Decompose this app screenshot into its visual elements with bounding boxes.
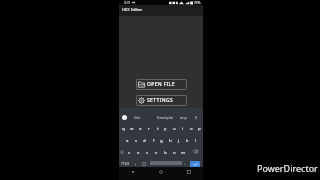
button[interactable]: e (138, 123, 143, 133)
staticText: j (178, 137, 180, 143)
button[interactable]: i (180, 123, 185, 133)
staticText: n (173, 149, 176, 155)
button[interactable]: y (163, 123, 168, 133)
button[interactable]: Recents (175, 167, 203, 180)
staticText: t (157, 125, 159, 131)
button[interactable]: Backspace (192, 148, 199, 155)
button[interactable]: j (176, 135, 181, 145)
button[interactable]: ?123 (121, 161, 130, 166)
staticText: i (182, 125, 184, 131)
staticText: 9:31 (124, 0, 131, 5)
staticText: SETTINGS (147, 97, 174, 104)
staticText: c (146, 149, 149, 155)
staticText: , (135, 160, 137, 166)
staticText: s (135, 137, 138, 143)
staticText: q (122, 125, 125, 131)
staticText: the (134, 115, 141, 120)
button[interactable]: Home (147, 167, 175, 180)
button[interactable]: f (151, 135, 156, 145)
button[interactable]: g (159, 135, 164, 145)
button[interactable]: Voice input (193, 115, 198, 120)
staticText: e (139, 125, 142, 131)
button[interactable]: m (181, 147, 186, 157)
button[interactable]: s (134, 135, 139, 145)
staticText: any (180, 115, 187, 120)
button[interactable]: t (155, 123, 160, 133)
staticText: o (190, 125, 193, 131)
staticText: z (128, 149, 131, 155)
staticText: g (160, 137, 163, 143)
staticText: HEX Editor (122, 7, 143, 12)
button[interactable]: v (154, 147, 159, 157)
staticText: h (169, 137, 172, 143)
button[interactable]: z (127, 147, 132, 157)
button[interactable]: x (136, 147, 141, 157)
button[interactable]: any (180, 115, 187, 120)
staticText: ?123 (121, 161, 130, 166)
button[interactable]: n (172, 147, 177, 157)
staticText: x (137, 149, 140, 155)
staticText: OPEN FILE (147, 81, 175, 88)
button[interactable]: p (197, 123, 202, 133)
button[interactable]: OPEN FILE (136, 79, 187, 90)
button[interactable]: b (163, 147, 168, 157)
staticText: Example (157, 115, 174, 120)
staticText: k (186, 137, 189, 143)
button[interactable]: h (168, 135, 173, 145)
button[interactable]: r (146, 123, 151, 133)
button[interactable]: the (134, 115, 141, 120)
staticText: d (143, 137, 146, 143)
staticText: p (198, 125, 201, 131)
button[interactable]: Google (122, 115, 127, 120)
button[interactable]: Emoji (141, 161, 146, 166)
staticText: 72% (194, 1, 201, 5)
button[interactable]: d (142, 135, 147, 145)
staticText: y (164, 125, 167, 131)
button[interactable]: . (184, 160, 186, 166)
button[interactable]: u (172, 123, 177, 133)
staticText: f (153, 137, 155, 143)
staticText: a (126, 137, 129, 143)
staticText: r (148, 125, 150, 131)
button[interactable]: Shift (118, 148, 125, 155)
button[interactable]: o (189, 123, 194, 133)
button[interactable]: Example (157, 115, 174, 120)
staticText: v (155, 149, 158, 155)
button[interactable]: SETTINGS (136, 95, 187, 106)
button[interactable]: w (129, 123, 134, 133)
staticText: . (184, 160, 186, 166)
staticText: m (181, 149, 186, 155)
staticText: b (164, 149, 167, 155)
button[interactable]: , (135, 160, 137, 166)
staticText: PowerDirector (257, 162, 318, 174)
button[interactable]: c (145, 147, 150, 157)
button[interactable]: Back (119, 167, 147, 180)
staticText: u (173, 125, 176, 131)
button[interactable]: l (193, 135, 198, 145)
button[interactable]: k (185, 135, 190, 145)
staticText: l (195, 137, 197, 143)
button[interactable]: Enter (190, 161, 200, 168)
button[interactable]: a (125, 135, 130, 145)
button[interactable]: q (121, 123, 126, 133)
staticText: w (130, 125, 134, 131)
